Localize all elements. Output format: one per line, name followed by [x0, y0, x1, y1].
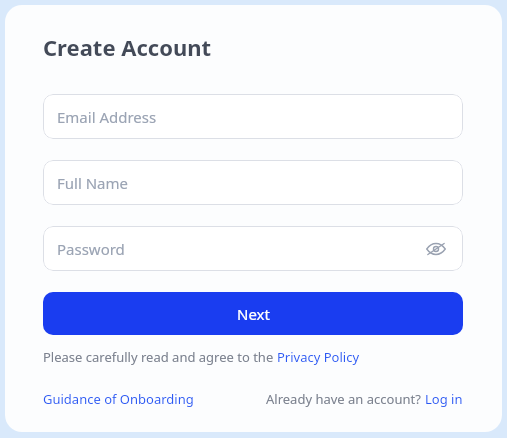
staticText: Guidance of Onboarding	[43, 390, 194, 408]
staticText: Full Name	[57, 173, 128, 193]
button[interactable]: Password	[43, 226, 463, 271]
staticText: Password	[57, 239, 125, 259]
button[interactable]: Email Address	[43, 94, 463, 139]
button[interactable]: Next	[43, 292, 463, 335]
button[interactable]: Guidance of Onboarding	[43, 390, 194, 408]
button[interactable]: Show password	[423, 236, 449, 262]
staticText: Privacy Policy	[277, 348, 360, 366]
staticText: Please carefully read and agree to the	[43, 348, 277, 366]
staticText: Already have an account?	[266, 390, 425, 408]
button[interactable]: Full Name	[43, 160, 463, 205]
staticText: Email Address	[57, 107, 157, 127]
staticText: Log in	[425, 390, 463, 408]
staticText: Next	[237, 304, 270, 324]
staticText: Create Account	[43, 32, 212, 62]
button[interactable]: Log in	[425, 390, 463, 408]
button[interactable]: Privacy Policy	[277, 348, 360, 366]
